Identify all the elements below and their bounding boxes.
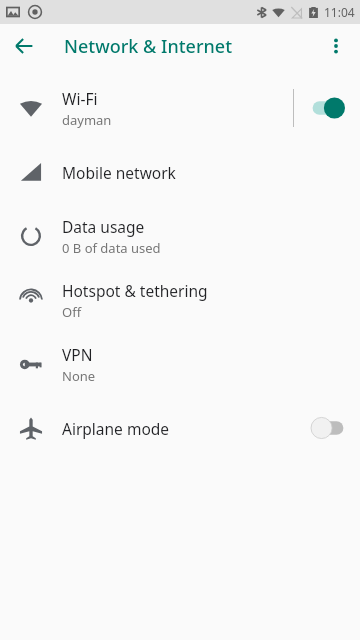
staticText: Data usage [62,216,145,237]
staticText: 11:04 [324,4,355,20]
button[interactable]: Back [4,26,44,66]
staticText: Mobile network [62,162,176,183]
button[interactable]: Hotspot & tethering [0,268,360,332]
button[interactable]: Airplane mode toggle, off [298,400,360,456]
button[interactable]: Data usage [0,204,360,268]
button[interactable]: Airplane mode [0,396,360,460]
staticText: 0 B of data used [62,239,161,257]
button[interactable]: Wi-Fi [0,76,360,140]
button[interactable]: Wi-Fi toggle, on [294,80,360,136]
staticText: Wi-Fi [62,88,98,109]
staticText: Hotspot & tethering [62,280,208,301]
button[interactable]: VPN [0,332,360,396]
button[interactable]: Mobile network [0,140,360,204]
staticText: Airplane mode [62,418,170,439]
staticText: Off [62,303,82,321]
staticText: Network & Internet [64,34,233,59]
staticText: None [62,367,96,385]
button[interactable]: More options [316,26,356,66]
staticText: dayman [62,111,112,129]
staticText: VPN [62,344,93,365]
